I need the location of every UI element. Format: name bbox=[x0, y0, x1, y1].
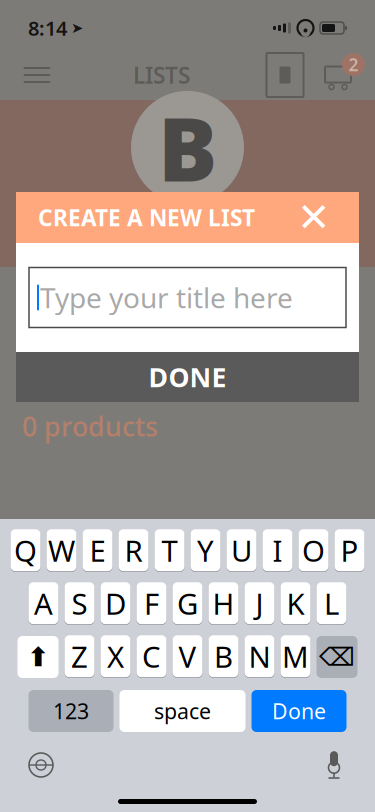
button[interactable]: H bbox=[208, 583, 238, 625]
button[interactable]: X bbox=[100, 636, 130, 678]
staticText: X bbox=[107, 637, 124, 676]
staticText: S bbox=[71, 584, 87, 623]
staticText: S bbox=[71, 584, 87, 623]
button[interactable]: D bbox=[100, 583, 130, 625]
staticText: Y bbox=[197, 531, 214, 570]
button[interactable]: U bbox=[226, 530, 256, 572]
staticText: 2 bbox=[348, 53, 358, 76]
button[interactable]: Change keyboard bbox=[14, 744, 68, 786]
staticText: R bbox=[124, 531, 142, 570]
staticText: K bbox=[286, 584, 304, 623]
staticText: Holiday Wishlist bbox=[22, 294, 175, 400]
button[interactable]: Card bbox=[259, 53, 311, 97]
staticText: O bbox=[302, 531, 325, 570]
button[interactable]: L bbox=[316, 583, 346, 625]
staticText: P bbox=[340, 531, 358, 570]
staticText: space bbox=[154, 697, 211, 725]
button[interactable]: E bbox=[82, 530, 112, 572]
staticText: T bbox=[161, 531, 177, 570]
button[interactable]: space bbox=[119, 690, 245, 732]
button[interactable]: C bbox=[136, 636, 166, 678]
button[interactable]: S bbox=[64, 583, 94, 625]
staticText: 8:14 bbox=[28, 15, 67, 41]
staticText: Z bbox=[71, 637, 88, 676]
staticText: L bbox=[324, 584, 339, 623]
button[interactable]: Y bbox=[190, 530, 220, 572]
staticText: J bbox=[255, 584, 263, 623]
staticText: L bbox=[324, 584, 339, 623]
staticText: 0 products bbox=[22, 408, 158, 444]
button[interactable]: I bbox=[262, 530, 292, 572]
staticText: B bbox=[214, 637, 233, 676]
staticText: Type your title here bbox=[40, 279, 293, 316]
staticText: R bbox=[124, 531, 142, 570]
staticText: E bbox=[89, 531, 105, 570]
staticText: E bbox=[89, 531, 105, 570]
staticText: DONE bbox=[148, 359, 226, 395]
staticText: H bbox=[212, 584, 234, 623]
staticText: Q bbox=[14, 531, 37, 570]
staticText: 123 bbox=[53, 697, 89, 725]
staticText: Q bbox=[14, 531, 37, 570]
staticText: I bbox=[272, 531, 282, 570]
button[interactable]: Dictate bbox=[307, 744, 361, 786]
staticText: G bbox=[177, 584, 198, 623]
staticText: Z bbox=[71, 637, 88, 676]
staticText: W bbox=[48, 531, 75, 570]
staticText: Y bbox=[197, 531, 214, 570]
staticText: U bbox=[231, 531, 252, 570]
staticText: X bbox=[107, 637, 124, 676]
staticText: B bbox=[158, 89, 217, 206]
button[interactable]: Holiday Wishlist bbox=[0, 267, 375, 427]
staticText: N bbox=[248, 637, 270, 676]
staticText: D bbox=[105, 584, 126, 623]
staticText: M bbox=[282, 637, 309, 676]
button[interactable]: Done bbox=[251, 690, 346, 732]
button[interactable]: F bbox=[136, 583, 166, 625]
staticText: P bbox=[340, 531, 358, 570]
staticText: V bbox=[178, 637, 196, 676]
staticText: I bbox=[272, 531, 282, 570]
staticText: U bbox=[231, 531, 252, 570]
button[interactable]: W bbox=[46, 530, 76, 572]
button[interactable]: 123 bbox=[28, 690, 113, 732]
staticText: B bbox=[214, 637, 233, 676]
staticText: C bbox=[142, 637, 161, 676]
button[interactable]: ⌫ bbox=[316, 636, 357, 678]
staticText: A bbox=[34, 584, 53, 623]
staticText: W bbox=[48, 531, 75, 570]
staticText: ⬆ bbox=[27, 642, 49, 672]
staticText: LISTS bbox=[133, 60, 190, 90]
staticText: D bbox=[105, 584, 126, 623]
button[interactable]: Close bbox=[291, 194, 337, 240]
staticText: J bbox=[255, 584, 263, 623]
button[interactable]: G bbox=[172, 583, 202, 625]
button[interactable]: DONE bbox=[16, 352, 359, 402]
staticText: F bbox=[144, 584, 159, 623]
button[interactable]: J bbox=[244, 583, 274, 625]
button[interactable]: Z bbox=[64, 636, 94, 678]
button[interactable]: T bbox=[154, 530, 184, 572]
button[interactable]: N bbox=[244, 636, 274, 678]
staticText: ⌫ bbox=[319, 643, 355, 671]
staticText: V bbox=[178, 637, 196, 676]
button[interactable]: P bbox=[334, 530, 364, 572]
staticText: T bbox=[161, 531, 177, 570]
button[interactable]: A bbox=[28, 583, 58, 625]
button[interactable]: M bbox=[280, 636, 310, 678]
button[interactable]: K bbox=[280, 583, 310, 625]
button[interactable]: V bbox=[172, 636, 202, 678]
button[interactable]: O bbox=[298, 530, 328, 572]
staticText: ➤ bbox=[71, 20, 83, 36]
staticText: N bbox=[248, 637, 270, 676]
button[interactable]: B bbox=[208, 636, 238, 678]
staticText: M bbox=[282, 637, 309, 676]
button[interactable]: Cart, 2 items bbox=[311, 53, 365, 97]
staticText: CREATE A NEW LIST bbox=[38, 202, 255, 232]
button[interactable]: ⬆ bbox=[17, 636, 58, 678]
staticText: A bbox=[34, 584, 53, 623]
button[interactable]: Q bbox=[10, 530, 40, 572]
button[interactable]: Menu bbox=[10, 53, 64, 97]
button[interactable]: R bbox=[118, 530, 148, 572]
staticText: H bbox=[212, 584, 234, 623]
